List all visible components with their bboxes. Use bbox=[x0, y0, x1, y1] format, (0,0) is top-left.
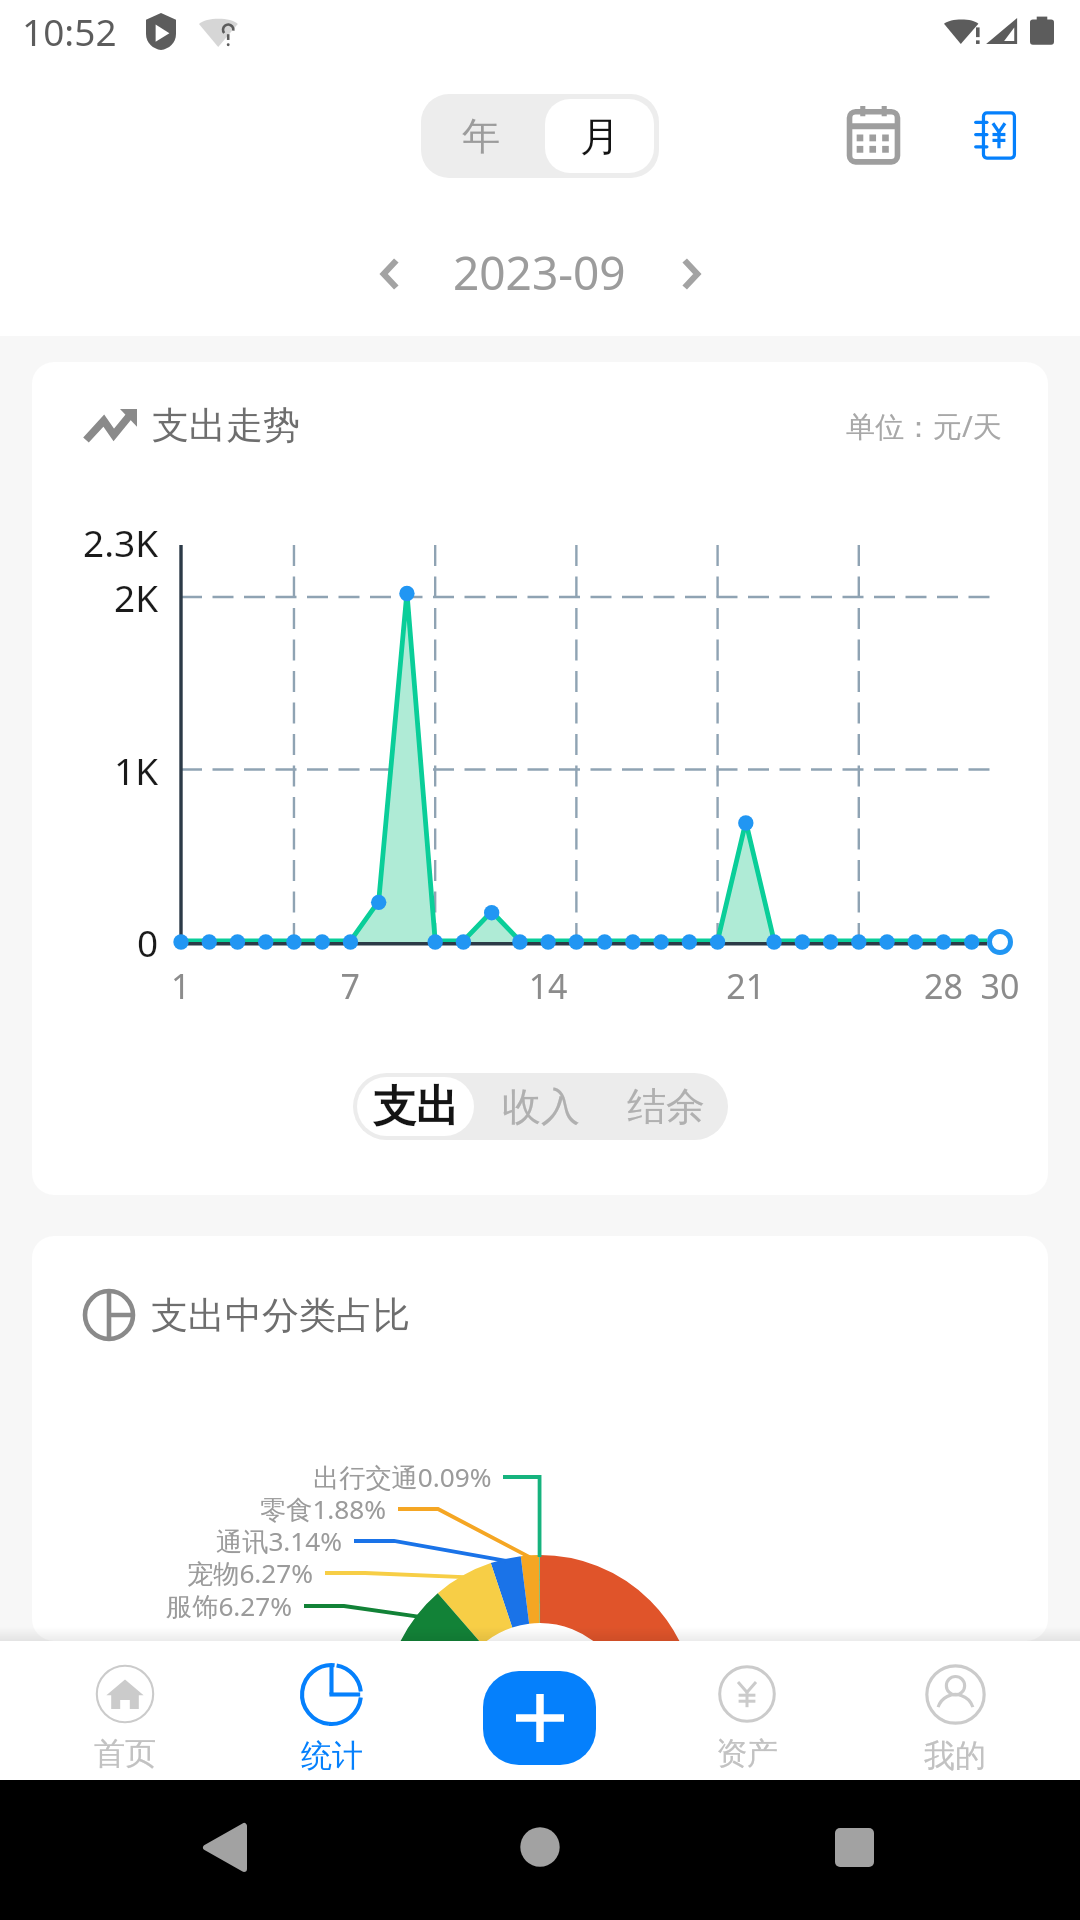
button[interactable]: 结余 bbox=[603, 1073, 728, 1140]
staticText: 支出走势 bbox=[152, 402, 300, 449]
button[interactable]: 支出 bbox=[357, 1077, 474, 1136]
button[interactable]: 统计 bbox=[228, 1641, 435, 1780]
button[interactable]: Add record bbox=[483, 1671, 596, 1765]
button[interactable]: Ledger bbox=[954, 94, 1036, 176]
staticText: 结余 bbox=[627, 1082, 705, 1131]
button[interactable]: Home bbox=[382, 1780, 697, 1920]
button[interactable]: Recent apps bbox=[697, 1780, 1012, 1920]
button[interactable]: 收入 bbox=[478, 1073, 603, 1140]
staticText: 单位：元/天 bbox=[846, 406, 1002, 446]
staticText: 支出中分类占比 bbox=[151, 1292, 410, 1339]
button[interactable]: Calendar bbox=[832, 93, 914, 175]
button[interactable]: Next month bbox=[653, 236, 729, 312]
staticText: 资产 bbox=[716, 1734, 778, 1773]
staticText: 收入 bbox=[502, 1082, 580, 1131]
button[interactable]: Previous month bbox=[352, 236, 428, 312]
staticText: 10:52 bbox=[22, 6, 117, 56]
button[interactable]: 年 bbox=[421, 94, 540, 178]
button[interactable]: 我的 bbox=[851, 1641, 1059, 1780]
staticText: 2023-09 bbox=[453, 241, 626, 304]
staticText: 年 bbox=[462, 112, 500, 160]
button[interactable]: Back bbox=[68, 1780, 382, 1920]
staticText: 统计 bbox=[301, 1736, 363, 1775]
button[interactable]: 月 bbox=[545, 99, 654, 173]
staticText: 首页 bbox=[94, 1734, 156, 1773]
staticText: 我的 bbox=[924, 1736, 986, 1775]
button[interactable]: 首页 bbox=[21, 1641, 228, 1780]
button[interactable]: 资产 bbox=[643, 1641, 851, 1780]
staticText: 支出 bbox=[373, 1080, 459, 1134]
staticText: 月 bbox=[580, 111, 620, 161]
